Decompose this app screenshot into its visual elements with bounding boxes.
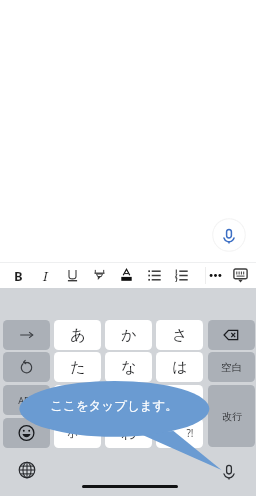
button[interactable]: Highlight [87, 263, 112, 288]
button[interactable]: Undo [3, 352, 50, 382]
button[interactable]: Italic [33, 263, 58, 288]
button[interactable]: Dictation [217, 459, 241, 483]
button[interactable]: Switch keyboard [15, 458, 39, 482]
button[interactable]: Emoji [3, 418, 50, 448]
staticText: な [121, 358, 137, 377]
button[interactable]: Backspace [208, 320, 255, 350]
button[interactable]: More options [203, 263, 228, 288]
button[interactable]: あ [54, 320, 101, 350]
button[interactable]: な [105, 352, 152, 382]
staticText: 小ﾞﾟ [67, 428, 89, 439]
staticText: さ [172, 326, 188, 345]
button[interactable]: 小ﾞﾟ [54, 418, 101, 448]
staticText: ABC [18, 394, 36, 406]
staticText: 改行 [222, 410, 242, 423]
button[interactable]: ここをタップします。 [19, 381, 209, 431]
button[interactable]: わ [105, 418, 152, 448]
staticText: ここをタップします。 [50, 398, 178, 414]
button[interactable]: は [156, 352, 203, 382]
button[interactable]: 改行 [208, 385, 255, 447]
staticText: た [70, 358, 86, 377]
button[interactable]: ABC [3, 385, 50, 415]
staticText: B [14, 267, 23, 285]
button[interactable]: Numbered list [169, 263, 194, 288]
button[interactable]: Hide keyboard [228, 263, 253, 288]
button[interactable]: ま [54, 385, 101, 415]
staticText: や [121, 391, 137, 410]
button[interactable]: Next candidate [3, 320, 50, 350]
button[interactable]: Bulleted list [142, 263, 167, 288]
button[interactable]: ら [156, 385, 203, 415]
button[interactable]: Underline [60, 263, 85, 288]
staticText: わ [121, 424, 137, 443]
button[interactable]: Text color [114, 263, 139, 288]
button[interactable]: さ [156, 320, 203, 350]
button[interactable]: 空白 [208, 352, 255, 382]
button[interactable]: Voice input [212, 218, 246, 252]
staticText: 、。?! [166, 426, 194, 440]
staticText: は [172, 358, 188, 377]
staticText: ま [70, 391, 86, 410]
button[interactable]: 、。?! [156, 418, 203, 448]
staticText: I [43, 267, 48, 285]
staticText: か [121, 326, 137, 345]
staticText: あ [70, 326, 86, 345]
button[interactable]: Bold [6, 263, 31, 288]
button[interactable]: や [105, 385, 152, 415]
staticText: 空白 [221, 361, 242, 374]
button[interactable]: た [54, 352, 101, 382]
button[interactable]: か [105, 320, 152, 350]
